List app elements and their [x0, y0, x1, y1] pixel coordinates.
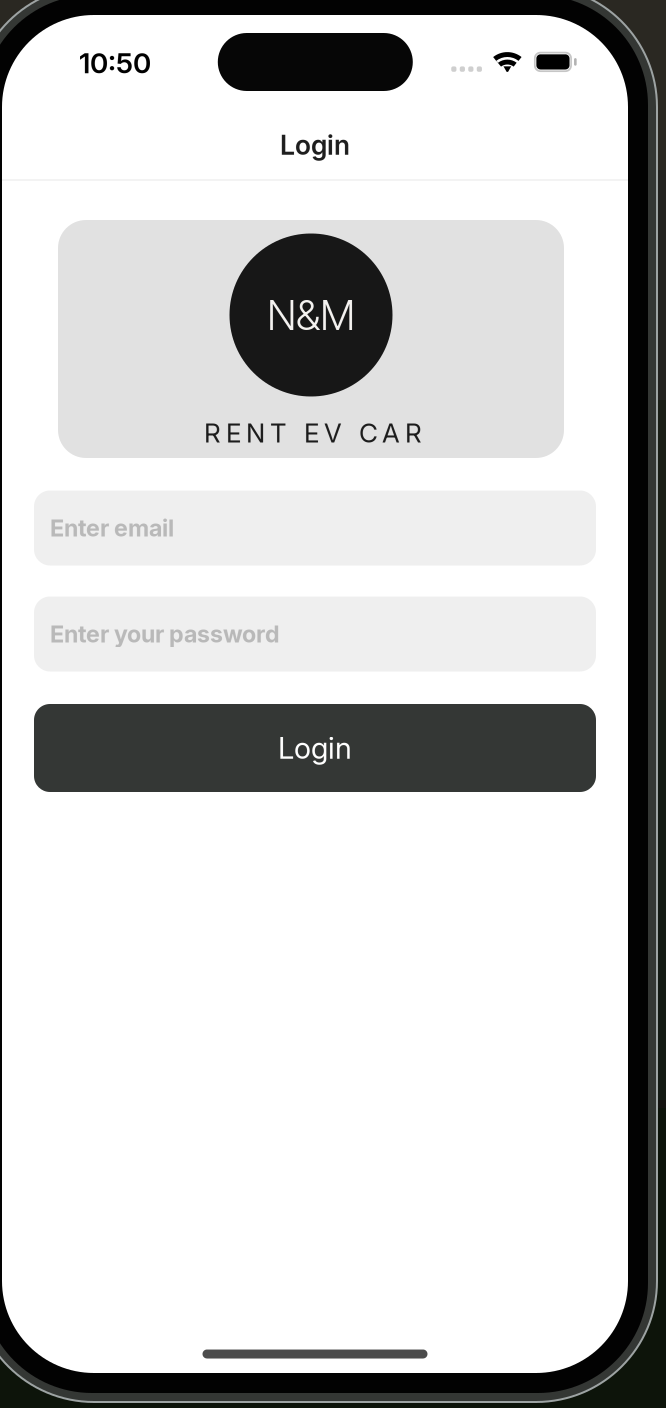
staticText: 10:50 [79, 46, 151, 80]
button[interactable]: Enter email [34, 490, 596, 565]
button[interactable]: Login [195, 117, 435, 173]
staticText: RENT EV CAR [204, 417, 422, 449]
staticText: N&M [267, 290, 355, 340]
staticText: Enter your password [50, 620, 280, 648]
staticText: Login [280, 129, 350, 161]
button[interactable]: Login [34, 704, 596, 792]
button[interactable]: Enter your password [34, 596, 596, 671]
staticText: Login [278, 730, 352, 766]
staticText: Enter email [50, 514, 174, 542]
